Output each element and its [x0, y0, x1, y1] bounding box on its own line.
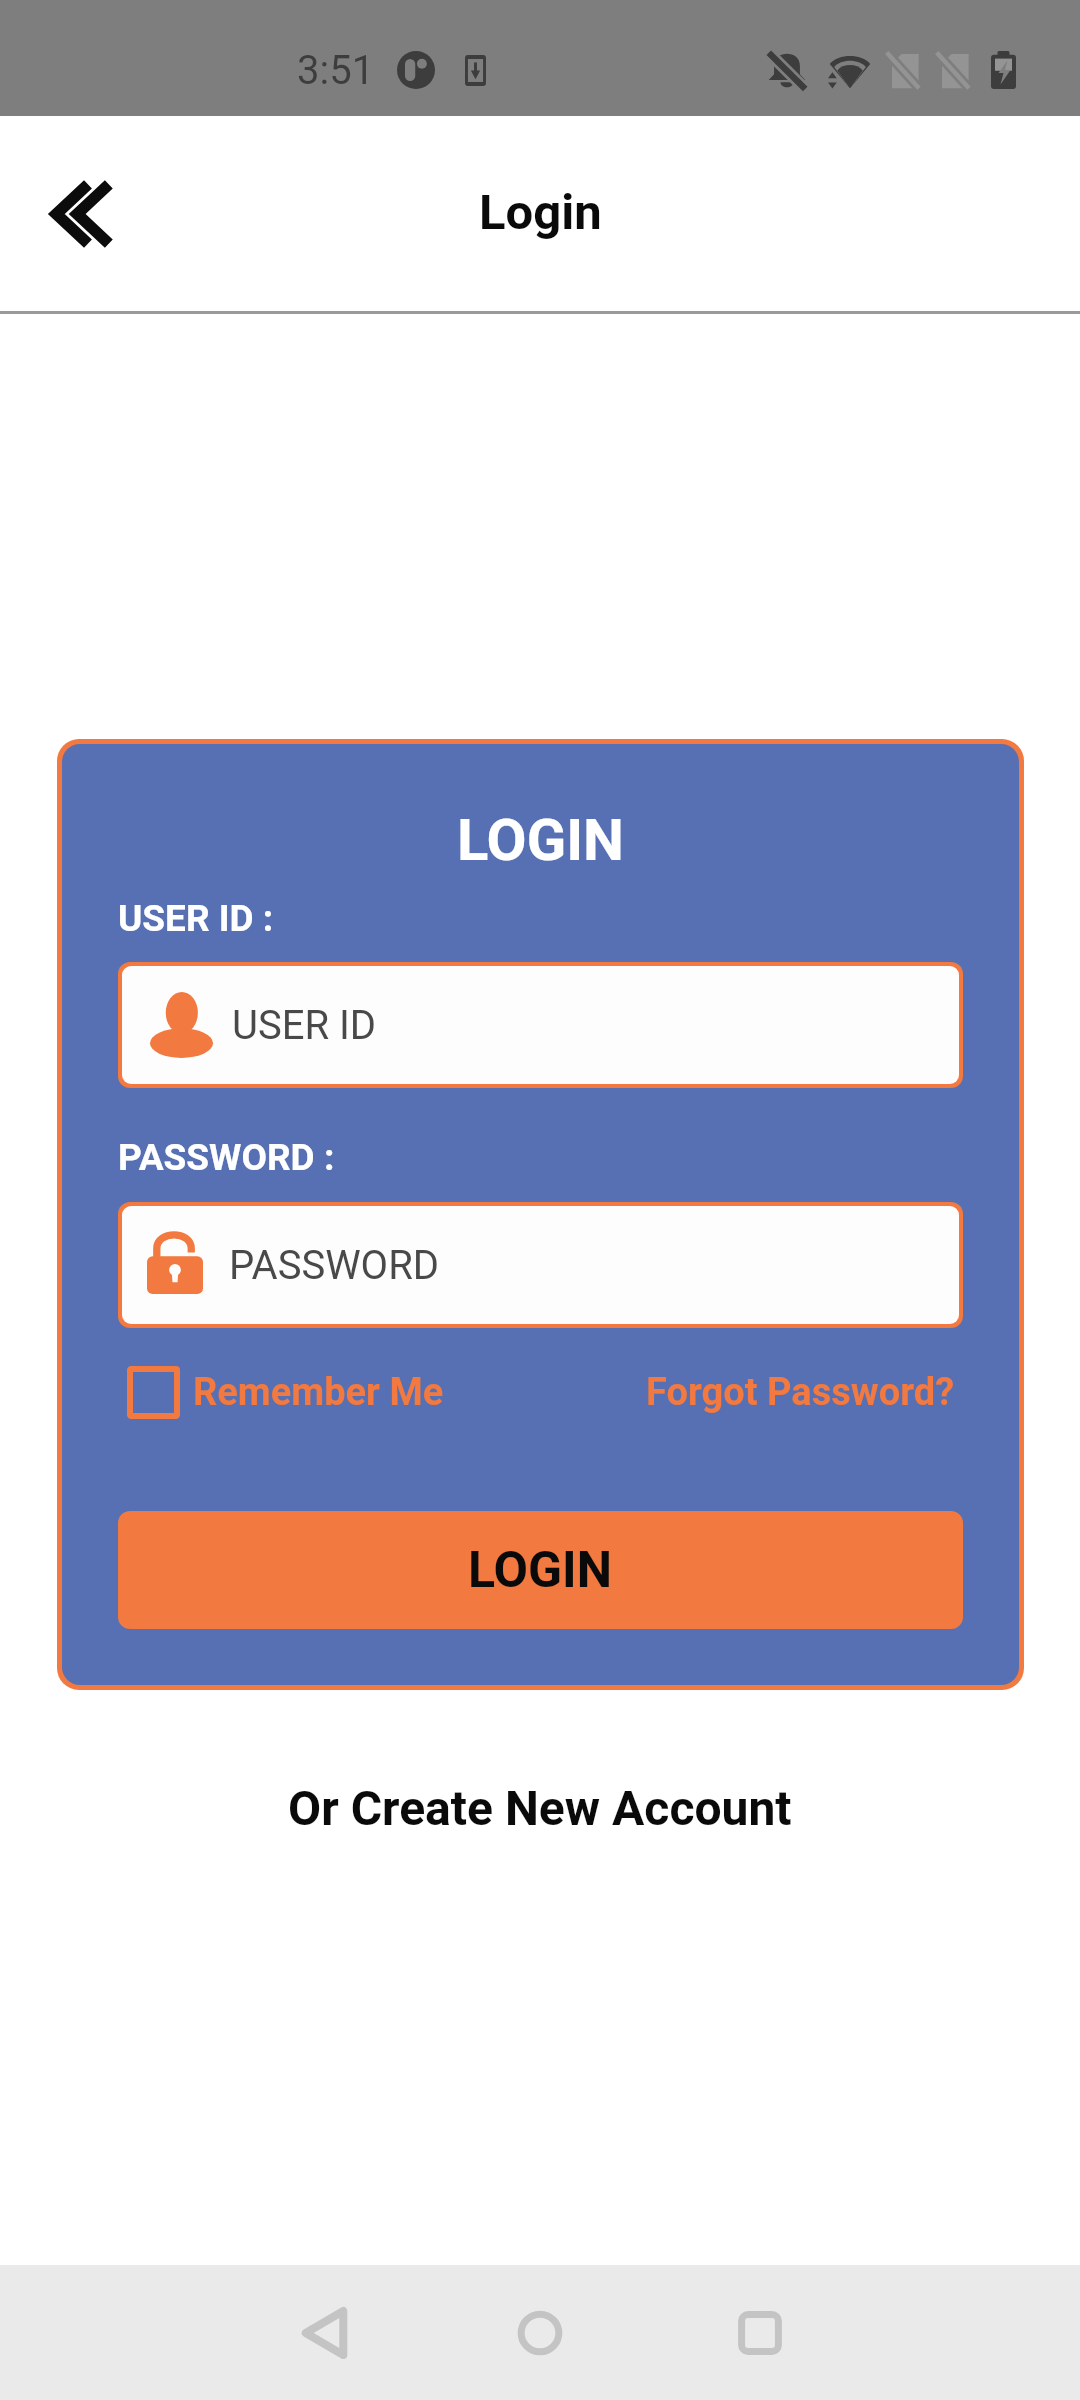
button[interactable]: Or Create New Account	[288, 1780, 792, 1836]
staticText: USER ID	[232, 1002, 377, 1049]
button[interactable]: Remember Me	[127, 1366, 444, 1419]
button[interactable]: LOGIN	[118, 1511, 963, 1629]
staticText: PASSWORD :	[118, 1136, 335, 1179]
staticText: LOGIN	[468, 1541, 613, 1600]
staticText: USER ID :	[118, 897, 274, 940]
staticText: PASSWORD	[229, 1242, 440, 1289]
staticText: 3:51	[297, 47, 375, 94]
button[interactable]: PASSWORD	[122, 1206, 959, 1324]
button[interactable]: Back	[13, 149, 143, 279]
button[interactable]: Home	[480, 2273, 600, 2393]
button[interactable]: USER ID	[122, 966, 959, 1084]
staticText: Remember Me	[193, 1370, 444, 1415]
button[interactable]: Forgot Password?	[646, 1370, 955, 1415]
staticText: LOGIN	[457, 806, 625, 874]
staticText: Login	[479, 184, 602, 241]
button[interactable]: Back	[260, 2273, 380, 2393]
button[interactable]: Recents	[700, 2273, 820, 2393]
